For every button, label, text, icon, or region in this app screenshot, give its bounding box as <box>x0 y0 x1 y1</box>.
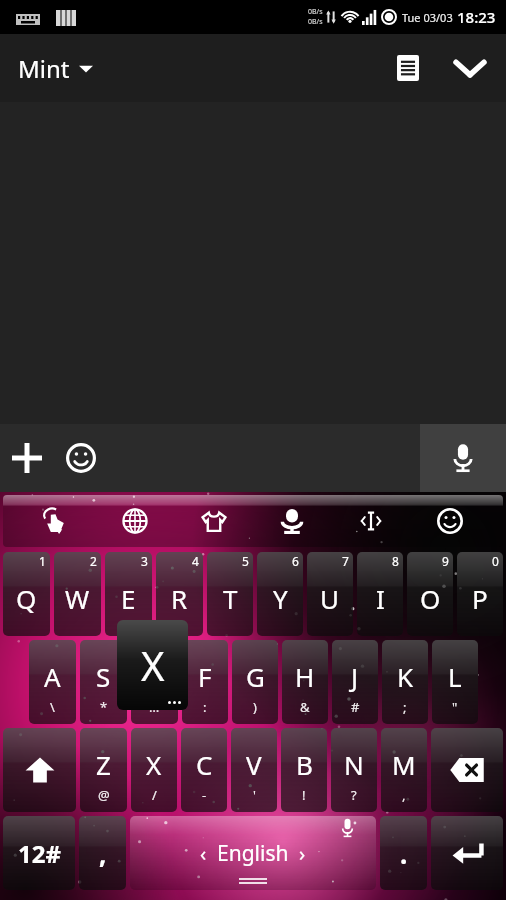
staticText: ‹ <box>200 840 207 867</box>
button[interactable]: Conversation list <box>384 44 432 92</box>
staticText: 1 <box>39 553 46 569</box>
button[interactable]: Mint <box>14 46 97 91</box>
staticText: X <box>146 747 162 782</box>
staticText: E <box>121 581 136 616</box>
button[interactable]: S <box>80 640 127 724</box>
staticText: G <box>246 659 265 694</box>
staticText: U <box>320 581 340 616</box>
button[interactable]: Themes <box>188 495 240 547</box>
staticText: " <box>452 698 458 716</box>
staticText: 0 <box>492 553 499 569</box>
staticText: X <box>141 638 165 692</box>
staticText: L <box>448 659 462 694</box>
staticText: R <box>171 581 188 616</box>
button[interactable]: X <box>131 728 177 812</box>
staticText: T <box>223 581 238 616</box>
staticText: Z <box>96 747 111 782</box>
button[interactable]: A <box>29 640 76 724</box>
button[interactable]: T <box>207 552 253 636</box>
staticText: C <box>196 747 213 782</box>
staticText: 0B/s <box>308 7 323 17</box>
staticText: ? <box>351 786 357 804</box>
staticText: 7 <box>342 553 349 569</box>
staticText: , <box>402 786 406 804</box>
staticText: 18:23 <box>457 7 496 27</box>
staticText: 4 <box>192 553 199 569</box>
button[interactable]: Voice input <box>420 424 506 492</box>
button[interactable]: E <box>105 552 152 636</box>
staticText: : <box>203 698 207 716</box>
button[interactable]: Move cursor <box>345 495 397 547</box>
button[interactable]: W <box>54 552 101 636</box>
staticText: ' <box>253 786 256 804</box>
button[interactable]: R <box>156 552 203 636</box>
staticText: H <box>295 659 315 694</box>
staticText: S <box>96 659 111 694</box>
staticText: ) <box>253 698 257 716</box>
button[interactable]: U <box>307 552 353 636</box>
staticText: \ <box>50 698 55 716</box>
staticText: F <box>198 659 212 694</box>
staticText: 8 <box>392 553 399 569</box>
button[interactable]: Languages <box>109 495 161 547</box>
staticText: # <box>351 698 360 716</box>
button[interactable]: D <box>131 640 178 724</box>
staticText: Mint <box>18 52 70 85</box>
button[interactable]: Shift <box>3 728 76 812</box>
staticText: K <box>397 659 414 694</box>
staticText: 2 <box>90 553 97 569</box>
staticText: , <box>99 836 107 871</box>
button[interactable]: Handwriting <box>30 495 82 547</box>
button[interactable]: L <box>432 640 478 724</box>
button[interactable]: Emoji <box>424 495 476 547</box>
staticText: V <box>246 747 262 782</box>
staticText: 5 <box>242 553 249 569</box>
staticText: … <box>149 698 160 716</box>
button[interactable]: , <box>79 816 126 890</box>
button[interactable]: Q <box>3 552 50 636</box>
button[interactable]: V <box>231 728 277 812</box>
button[interactable]: C <box>181 728 227 812</box>
button[interactable]: Add attachment <box>0 431 54 485</box>
button[interactable]: ‹ <box>130 816 376 890</box>
button[interactable]: M <box>381 728 427 812</box>
staticText: 6 <box>292 553 299 569</box>
button[interactable]: Emoji <box>54 431 108 485</box>
button[interactable]: Voice input <box>266 495 318 547</box>
button[interactable]: J <box>332 640 378 724</box>
staticText: Tue 03/03 <box>402 10 453 25</box>
staticText: - <box>202 786 207 804</box>
staticText: / <box>152 786 157 804</box>
staticText: . <box>400 836 408 871</box>
button[interactable]: B <box>281 728 327 812</box>
staticText: & <box>300 698 310 716</box>
button[interactable]: Collapse <box>444 42 496 94</box>
staticText: D <box>145 659 164 694</box>
button[interactable]: I <box>357 552 403 636</box>
button[interactable]: Backspace <box>431 728 503 812</box>
button[interactable]: G <box>232 640 278 724</box>
button[interactable]: 12# <box>3 816 75 890</box>
button[interactable]: O <box>407 552 453 636</box>
staticText: A <box>44 659 61 694</box>
staticText: @ <box>98 786 110 804</box>
staticText: I <box>376 581 385 616</box>
button[interactable]: Y <box>257 552 303 636</box>
staticText: O <box>420 581 441 616</box>
staticText: * <box>100 698 108 716</box>
staticText: P <box>472 581 488 616</box>
staticText: J <box>351 659 359 694</box>
staticText: 9 <box>442 553 449 569</box>
button[interactable]: N <box>331 728 377 812</box>
button[interactable]: H <box>282 640 328 724</box>
staticText: Q <box>16 581 37 616</box>
button[interactable]: Z <box>80 728 127 812</box>
button[interactable]: F <box>182 640 228 724</box>
button[interactable]: P <box>457 552 503 636</box>
button[interactable]: Enter <box>431 816 503 890</box>
staticText: N <box>344 747 364 782</box>
button[interactable]: K <box>382 640 428 724</box>
button[interactable]: . <box>380 816 427 890</box>
staticText: M <box>392 747 416 782</box>
staticText: ; <box>403 698 407 716</box>
